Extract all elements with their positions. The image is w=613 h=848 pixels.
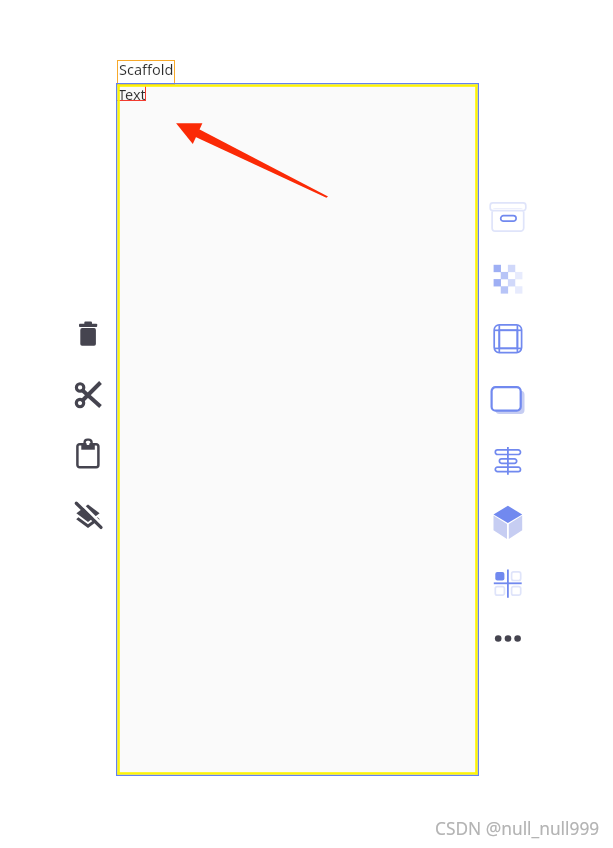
button[interactable]: Hide layers [68,496,108,536]
button[interactable]: Padding [488,319,528,359]
button[interactable]: Paste [68,435,108,475]
button[interactable]: Constraints [488,563,528,603]
button[interactable]: Background [488,197,528,237]
button[interactable]: More options [488,618,528,658]
staticText: Scaffold [119,59,174,79]
staticText: Text [118,84,146,101]
button[interactable]: 3D view [488,502,528,542]
button[interactable]: Align [488,440,528,480]
button[interactable]: Cut [68,375,108,415]
button[interactable]: Transparency [488,258,528,298]
button[interactable]: Elevation [488,379,528,419]
staticText: CSDN @null_null999 [435,817,600,841]
button[interactable]: Delete [68,314,108,354]
